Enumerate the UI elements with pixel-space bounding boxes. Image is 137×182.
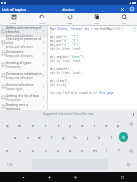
button[interactable]: ? xyxy=(113,144,124,157)
button[interactable]: c xyxy=(40,144,52,157)
staticText: new xyxy=(94,27,99,31)
button[interactable]: d xyxy=(34,131,45,143)
button[interactable]: x xyxy=(27,144,39,157)
staticText: ? xyxy=(118,148,120,153)
staticText: ); xyxy=(77,39,81,43)
staticText: e xyxy=(32,123,35,128)
staticText: idx in obj; xyxy=(50,83,68,87)
button[interactable]: s xyxy=(22,131,33,143)
staticText: , xyxy=(68,39,72,43)
button[interactable]: List of topics xyxy=(2,7,27,12)
staticText: redo xyxy=(67,21,73,24)
button[interactable]: n xyxy=(77,144,88,157)
button[interactable]: 8 xyxy=(89,118,100,130)
button[interactable]: Generic collections xyxy=(0,81,47,92)
staticText: Dictionaries xyxy=(6,65,21,69)
staticText: ); xyxy=(82,55,86,59)
staticText: Arrays and collections xyxy=(6,45,33,48)
button[interactable]: undo xyxy=(28,13,56,25)
button[interactable]: l xyxy=(106,131,117,143)
button[interactable]: Backspace xyxy=(125,144,136,157)
button[interactable]: run xyxy=(110,13,137,25)
button[interactable]: Backspace xyxy=(125,118,136,130)
staticText: Adding and removing of elements xyxy=(6,26,42,34)
staticText: m xyxy=(93,148,97,153)
button[interactable]: 9 xyxy=(101,118,112,130)
staticText: g xyxy=(62,135,65,140)
button[interactable]: 3 xyxy=(27,118,39,130)
button[interactable]: Shift xyxy=(1,144,13,157)
button[interactable]: More options xyxy=(131,112,135,116)
button[interactable]: 4 xyxy=(40,118,52,130)
staticText: r xyxy=(45,123,47,128)
staticText: "a" xyxy=(63,35,68,39)
button[interactable]: save xyxy=(0,13,28,25)
staticText: run xyxy=(122,21,126,24)
staticText: x xyxy=(32,148,35,153)
button[interactable]: h xyxy=(70,131,81,143)
staticText: p xyxy=(117,123,120,128)
staticText: 7 xyxy=(82,120,84,123)
staticText: z xyxy=(19,148,21,153)
button[interactable]: 0 xyxy=(113,118,124,130)
button[interactable]: ?123 xyxy=(1,158,19,171)
button[interactable]: Emoji xyxy=(121,158,136,171)
staticText: Generic collections xyxy=(6,83,34,87)
staticText: f xyxy=(51,135,53,140)
staticText: "b" xyxy=(63,39,68,43)
staticText: "1" xyxy=(72,35,77,39)
button[interactable]: redo xyxy=(56,13,83,25)
button[interactable]: Reading over a dictionary xyxy=(0,103,47,110)
button[interactable]: g xyxy=(58,131,69,143)
button[interactable]: v xyxy=(53,144,64,157)
staticText: save xyxy=(11,21,17,24)
button[interactable]: 1 xyxy=(1,118,13,130)
staticText: , xyxy=(25,163,26,167)
staticText: w xyxy=(18,123,22,128)
staticText: b xyxy=(69,148,72,153)
button[interactable]: j xyxy=(82,131,93,143)
staticText: ); xyxy=(121,27,125,31)
staticText: 8 xyxy=(94,120,96,123)
staticText: , xyxy=(68,35,72,39)
button[interactable]: 6 xyxy=(65,118,76,130)
button[interactable]: Close xyxy=(119,6,125,12)
staticText: obj.put( xyxy=(50,39,63,43)
button[interactable]: Recents xyxy=(71,173,79,181)
staticText: Dictionaries xyxy=(6,50,24,54)
button[interactable]: 5 xyxy=(53,118,64,130)
button[interactable]: Back xyxy=(19,173,27,181)
button[interactable]: 7 xyxy=(77,118,88,130)
button[interactable]: Search xyxy=(119,132,128,142)
button[interactable]: Info xyxy=(129,6,135,12)
staticText: s xyxy=(27,135,29,140)
button[interactable]: Screenshot xyxy=(118,173,126,181)
button[interactable]: Home xyxy=(45,173,53,181)
staticText: a xyxy=(14,135,17,140)
button[interactable]: Iterating of types xyxy=(0,59,47,70)
button[interactable]: Checking of presence of a key xyxy=(0,37,47,48)
button[interactable]: Dictionaries xyxy=(0,48,47,59)
staticText: 9 xyxy=(106,120,108,123)
staticText: Iterating of types xyxy=(6,61,31,65)
button[interactable]: ! xyxy=(101,144,112,157)
staticText: l xyxy=(111,135,113,140)
staticText: undo xyxy=(39,21,45,24)
button[interactable]: Getting of a list of keys xyxy=(0,92,47,103)
button[interactable]: a xyxy=(9,131,21,143)
button[interactable]: Adding and removing of elements xyxy=(0,26,47,37)
button[interactable]: m xyxy=(89,144,100,157)
button[interactable]: Dictionaries initialization xyxy=(0,70,47,81)
button[interactable]: b xyxy=(65,144,76,157)
staticText: obj.put( xyxy=(50,43,63,47)
button[interactable]: k xyxy=(94,131,105,143)
button[interactable]: 2 xyxy=(14,118,26,130)
button[interactable]: z xyxy=(14,144,26,157)
staticText: 1 xyxy=(7,120,9,123)
button[interactable]: f xyxy=(46,131,57,143)
staticText: ); xyxy=(77,43,81,47)
button[interactable]: copy xyxy=(83,13,110,25)
